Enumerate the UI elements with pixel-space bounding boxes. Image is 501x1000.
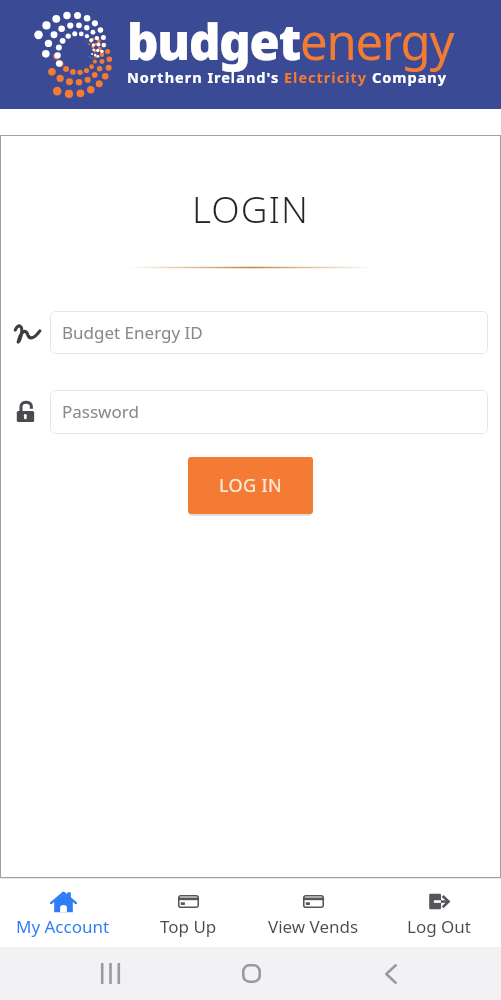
staticText: Log Out — [407, 915, 471, 938]
staticText: budget — [127, 8, 300, 75]
staticText: View Vends — [268, 915, 359, 938]
staticText: Top Up — [160, 915, 217, 938]
button[interactable]: Back — [355, 947, 427, 1000]
button[interactable]: Log Out — [376, 879, 501, 938]
staticText: My Account — [16, 915, 110, 938]
staticText: energy — [300, 8, 454, 75]
staticText: Password — [62, 400, 139, 423]
button[interactable]: Budget Energy ID — [50, 311, 488, 354]
staticText: Northern Ireland's — [127, 67, 284, 87]
staticText: Electricity — [284, 67, 372, 87]
button[interactable]: Recent apps — [74, 947, 146, 1000]
button[interactable]: LOG IN — [188, 457, 313, 514]
button[interactable]: My Account — [0, 879, 126, 938]
staticText: LOG IN — [219, 473, 283, 498]
button[interactable]: Top Up — [126, 879, 251, 938]
button[interactable]: View Vends — [251, 879, 376, 938]
staticText: LOGIN — [0, 183, 501, 233]
staticText: Company — [372, 67, 448, 87]
button[interactable]: Home — [215, 947, 287, 1000]
staticText: Budget Energy ID — [62, 321, 203, 344]
button[interactable]: Password — [50, 390, 488, 434]
